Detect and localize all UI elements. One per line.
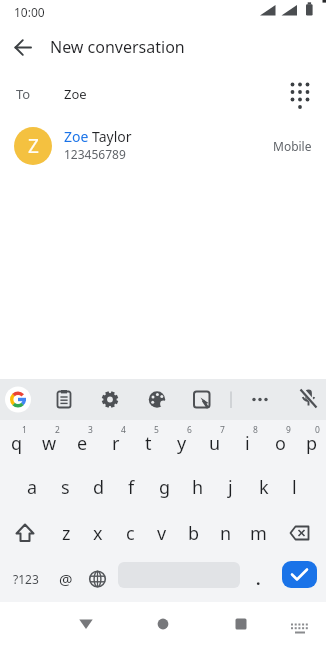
button[interactable]: @ [50,556,82,602]
button[interactable]: h [181,464,214,510]
staticText: e [77,431,88,456]
staticText: s [61,475,70,500]
staticText: l [292,475,297,500]
button[interactable]: w [33,420,66,466]
staticText: p [306,431,318,456]
staticText: @ [59,569,73,589]
button[interactable] [0,379,38,420]
staticText: t [145,431,152,456]
button[interactable]: d [82,464,115,510]
button[interactable] [283,610,315,642]
staticText: To [16,85,31,103]
button[interactable] [137,379,177,420]
button[interactable] [0,510,50,556]
staticText: Mobile [273,138,312,154]
staticText: n [220,521,232,546]
button[interactable]: k [247,464,280,510]
button[interactable] [90,379,130,420]
button[interactable]: o [264,420,297,466]
button[interactable] [0,24,46,70]
staticText: a [27,475,38,500]
button[interactable] [44,379,84,420]
staticText: i [245,431,250,456]
staticText: 1 [22,424,27,436]
staticText: r [112,431,120,456]
button[interactable]: x [82,510,114,556]
staticText: 8 [253,424,258,436]
staticText: k [259,475,269,500]
staticText: Zoe Taylor [64,127,132,146]
staticText: o [275,431,286,456]
staticText: q [11,431,23,456]
button[interactable]: s [49,464,82,510]
staticText: 5 [154,424,159,436]
staticText: 6 [187,424,192,436]
button[interactable]: y [165,420,198,466]
button[interactable] [182,379,222,420]
staticText: u [209,431,221,456]
button[interactable]: j [214,464,247,510]
button[interactable]: i [231,420,264,466]
staticText: Z [28,133,39,159]
button[interactable]: p [297,420,326,466]
button[interactable]: m [242,510,274,556]
staticText: m [250,521,267,546]
staticText: Zoe [64,85,87,103]
button[interactable] [288,379,326,420]
button[interactable]: v [146,510,178,556]
staticText: 2 [55,424,60,436]
staticText: y [177,431,187,456]
button[interactable]: g [148,464,181,510]
button[interactable] [282,74,320,114]
staticText: 3 [88,424,93,436]
button[interactable] [221,606,261,646]
button[interactable]: l [280,464,309,510]
staticText: 123456789 [64,146,126,162]
staticText: w [42,431,57,456]
staticText: 9 [286,424,291,436]
staticText: g [159,475,171,500]
staticText: j [228,475,233,500]
staticText: 0 [315,424,320,436]
button[interactable]: r [99,420,132,466]
button[interactable]: t [132,420,165,466]
staticText: d [93,475,105,500]
button[interactable] [143,606,183,646]
button[interactable] [274,510,324,556]
button[interactable]: e [66,420,99,466]
staticText: v [157,521,167,546]
button[interactable]: f [115,464,148,510]
button[interactable]: n [210,510,242,556]
staticText: b [188,521,200,546]
staticText: z [62,521,71,546]
staticText: 4 [121,424,126,436]
button[interactable]: c [114,510,146,556]
staticText: c [126,521,135,546]
staticText: . [256,568,261,590]
button[interactable] [282,561,317,588]
button[interactable]: b [178,510,210,556]
staticText: ?123 [13,571,39,587]
staticText: f [128,475,135,500]
staticText: x [93,521,103,546]
button[interactable]: a [16,464,49,510]
button[interactable]: u [198,420,231,466]
staticText: h [192,475,204,500]
button[interactable] [240,379,280,420]
button[interactable]: Z [0,123,326,169]
button[interactable]: . [246,556,270,602]
button[interactable]: z [50,510,82,556]
staticText: 10:00 [14,4,45,20]
button[interactable] [66,606,106,646]
staticText: New conversation [50,36,185,58]
button[interactable] [82,556,113,602]
staticText: 7 [220,424,225,436]
button[interactable]: ?123 [0,556,52,602]
button[interactable]: q [0,420,33,466]
